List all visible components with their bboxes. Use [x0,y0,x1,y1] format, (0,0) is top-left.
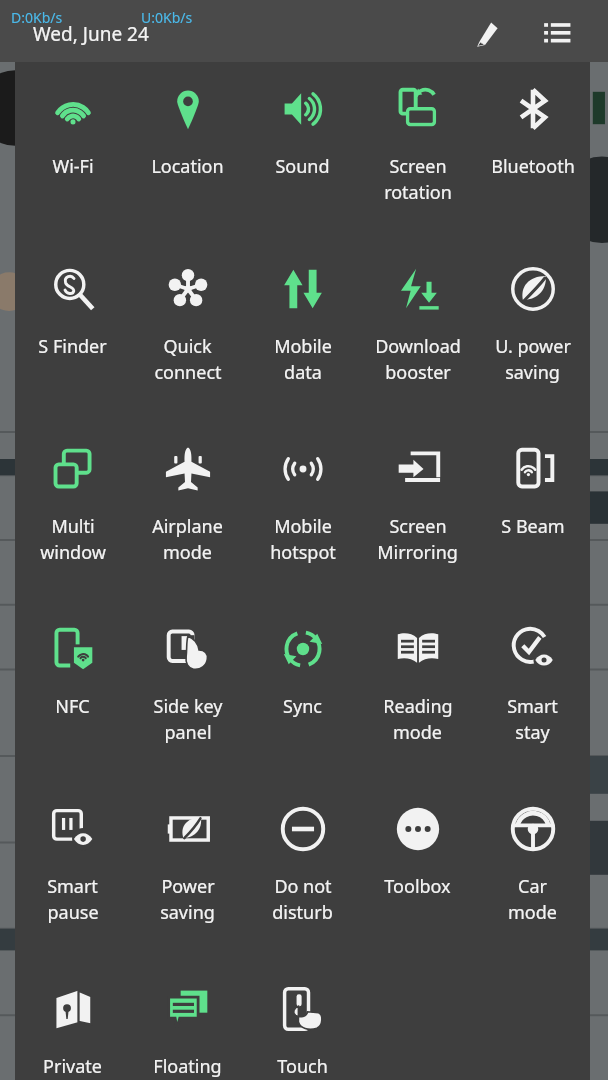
staticText: Smart [47,874,98,899]
button[interactable]: S Beam [475,422,590,602]
staticText: Screen [389,154,447,179]
staticText: Multi [51,514,95,539]
button[interactable]: Sync [245,602,360,782]
staticText: Bluetooth [491,154,575,179]
button[interactable]: S Finder [15,242,130,422]
button[interactable]: Location [130,62,245,242]
staticText: Download [375,334,461,359]
staticText: mode [163,540,212,565]
staticText: Mirroring [377,540,458,565]
staticText: rotation [384,180,452,205]
staticText: Quick [163,334,212,359]
staticText: Do not [274,874,332,899]
staticText: stay [515,720,550,745]
button[interactable]: Smart [475,602,590,782]
button[interactable]: Sound [245,62,360,242]
staticText: S Beam [501,514,565,539]
staticText: Airplane [152,514,223,539]
button[interactable]: Private [15,962,130,1080]
staticText: Private [43,1054,102,1079]
staticText: Wi-Fi [52,154,94,179]
staticText: Mobile [274,334,332,359]
staticText: Sync [283,694,322,719]
staticText: Mobile [274,514,332,539]
button[interactable]: Quick [130,242,245,422]
staticText: hotspot [270,540,336,565]
staticText: Wed, June 24 [33,21,149,47]
button[interactable]: Toolbox [360,782,475,962]
staticText: Power [161,874,215,899]
staticText: Reading [383,694,453,719]
staticText: Sound [275,154,330,179]
staticText: data [284,360,322,385]
staticText: Floating [153,1054,222,1079]
staticText: window [40,540,106,565]
staticText: U. power [495,334,571,359]
staticText: Touch [277,1054,328,1079]
staticText: Location [151,154,224,179]
button[interactable]: Mobile [245,422,360,602]
staticText: connect [154,360,222,385]
staticText: Screen [389,514,447,539]
button[interactable]: Power [130,782,245,962]
staticText: disturb [272,900,333,925]
staticText: D:0Kb/s [11,8,63,27]
button[interactable]: Screen [360,62,475,242]
button[interactable]: Download [360,242,475,422]
button[interactable]: Touch [245,962,360,1080]
button[interactable]: Wi-Fi [15,62,130,242]
staticText: panel [164,720,212,745]
button[interactable]: Side key [130,602,245,782]
button[interactable]: Edit [462,8,508,54]
button[interactable]: NFC [15,602,130,782]
button[interactable]: Airplane [130,422,245,602]
button[interactable]: Floating [130,962,245,1080]
staticText: Side key [153,694,223,719]
button[interactable]: Reading [360,602,475,782]
button[interactable]: Bluetooth [475,62,590,242]
button[interactable]: Show list [534,8,580,54]
staticText: Car [518,874,547,899]
button[interactable]: Car [475,782,590,962]
staticText: mode [393,720,442,745]
button[interactable]: Screen [360,422,475,602]
button[interactable]: U. power [475,242,590,422]
staticText: S Finder [38,334,107,359]
staticText: U:0Kb/s [141,8,193,27]
button[interactable]: Multi [15,422,130,602]
staticText: booster [385,360,451,385]
staticText: NFC [55,694,90,719]
staticText: mode [508,900,557,925]
staticText: Smart [507,694,558,719]
staticText: saving [160,900,215,925]
staticText: pause [47,900,99,925]
staticText: Toolbox [384,874,451,899]
button[interactable]: Do not [245,782,360,962]
button[interactable]: Smart [15,782,130,962]
button[interactable]: Mobile [245,242,360,422]
staticText: saving [505,360,560,385]
